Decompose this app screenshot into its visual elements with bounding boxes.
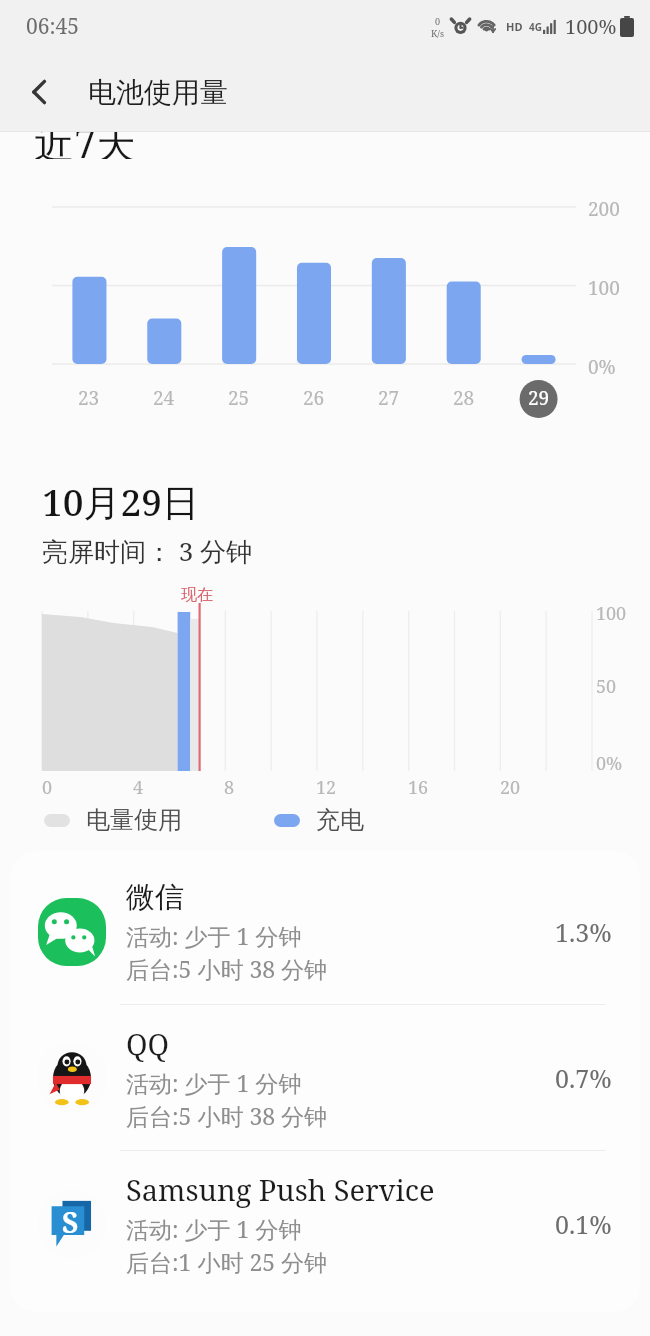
staticText: 4G <box>529 20 542 34</box>
button[interactable]: QQ <box>10 1005 640 1150</box>
staticText: 16 <box>408 775 429 800</box>
staticText: 0.1% <box>555 1207 612 1241</box>
staticText: 后台:5 小时 38 分钟 <box>126 1100 328 1131</box>
staticText: S <box>62 1203 79 1241</box>
staticText: 电池使用量 <box>88 75 228 110</box>
staticText: 24 <box>153 385 175 411</box>
staticText: 0% <box>588 354 616 380</box>
staticText: 20 <box>500 775 521 800</box>
staticText: 0 <box>42 775 53 800</box>
staticText: 50 <box>596 674 617 699</box>
staticText: 4 <box>133 775 144 800</box>
staticText: 27 <box>378 385 400 411</box>
staticText: 0.7% <box>555 1061 612 1095</box>
staticText: 12 <box>316 775 337 800</box>
staticText: HD <box>506 19 523 34</box>
staticText: 后台:1 小时 25 分钟 <box>126 1246 328 1277</box>
staticText: 10月29日 <box>42 476 200 527</box>
staticText: 0% <box>596 751 623 776</box>
staticText: 1.3% <box>555 915 612 949</box>
staticText: 29 <box>528 385 550 411</box>
staticText: 100 <box>596 601 627 626</box>
staticText: 活动: 少于 1 分钟 <box>126 1067 302 1098</box>
staticText: 200 <box>588 196 620 222</box>
staticText: 亮屏时间： 3 分钟 <box>42 533 253 569</box>
staticText: 近7天 <box>34 132 137 159</box>
button[interactable]: 微信 <box>10 859 640 1004</box>
staticText: 活动: 少于 1 分钟 <box>126 920 302 951</box>
staticText: 100 <box>588 275 620 301</box>
staticText: 100% <box>565 13 617 40</box>
staticText: 28 <box>453 385 475 411</box>
staticText: 26 <box>303 385 325 411</box>
staticText: 微信 <box>126 879 184 916</box>
staticText: 电量使用 <box>86 805 182 835</box>
staticText: 8 <box>224 775 235 800</box>
button[interactable]: 返回 <box>12 64 68 120</box>
staticText: 充电 <box>316 805 364 835</box>
staticText: QQ <box>126 1024 170 1063</box>
button[interactable]: S <box>10 1151 640 1296</box>
staticText: 23 <box>78 385 100 411</box>
staticText: Samsung Push Service <box>126 1170 435 1209</box>
staticText: 25 <box>228 385 250 411</box>
staticText: K/s <box>431 27 444 39</box>
staticText: 0 <box>435 15 441 27</box>
staticText: 活动: 少于 1 分钟 <box>126 1213 302 1244</box>
staticText: 现在 <box>181 585 213 605</box>
staticText: 后台:5 小时 38 分钟 <box>126 953 328 984</box>
staticText: 06:45 <box>26 12 79 41</box>
